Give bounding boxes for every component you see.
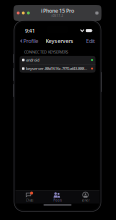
staticText: Chats <box>26 199 33 202</box>
staticText: Edit <box>86 37 95 45</box>
button[interactable]: keyserver-88d1616c-7f70-af43-888C-0 <box>19 64 95 73</box>
staticText: Server <box>81 199 89 202</box>
staticText: keyserver-88d1616c-7f70-af43-888C-0 <box>26 66 87 71</box>
staticText: 9:41 <box>25 27 35 34</box>
button[interactable]: Server <box>71 190 99 203</box>
staticText: Profile <box>23 37 38 45</box>
button[interactable]: Window options <box>92 8 101 17</box>
button[interactable]: Chats <box>15 190 43 203</box>
button[interactable]: Profile <box>15 36 41 46</box>
staticText: iOS 17.2 <box>51 14 63 18</box>
button[interactable]: Edit <box>83 36 99 46</box>
staticText: Peers <box>53 199 61 202</box>
staticText: Keyservers <box>45 37 73 45</box>
staticText: iPhone 15 Pro <box>41 7 74 14</box>
staticText: android <box>26 57 39 63</box>
staticText: CONNECTED KEYSERVERS <box>24 49 68 54</box>
button[interactable]: android <box>19 56 95 64</box>
button[interactable]: Peers <box>43 190 71 203</box>
